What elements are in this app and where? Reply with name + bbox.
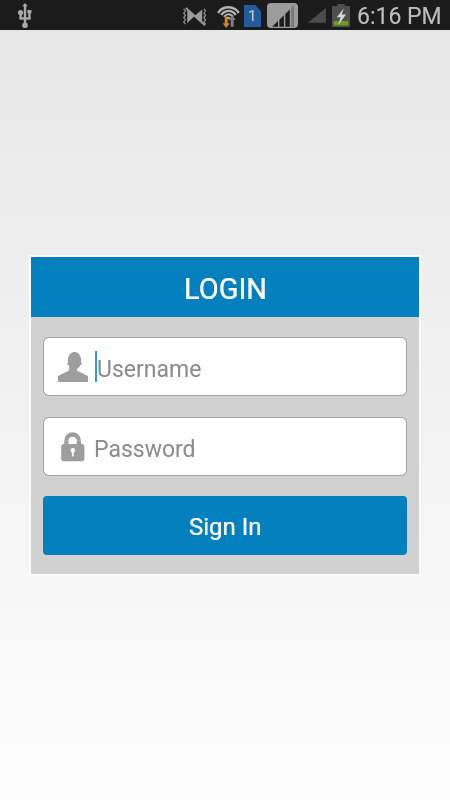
staticText: 1 <box>248 7 257 25</box>
staticText: Username <box>97 356 202 383</box>
staticText: 6:16 PM <box>357 3 442 30</box>
button[interactable]: Sign In <box>43 496 407 555</box>
button[interactable]: Password <box>43 417 407 476</box>
staticText: LOGIN <box>184 272 267 306</box>
button[interactable]: Username <box>43 337 407 396</box>
staticText: Password <box>94 436 196 463</box>
staticText: Sign In <box>189 513 262 541</box>
